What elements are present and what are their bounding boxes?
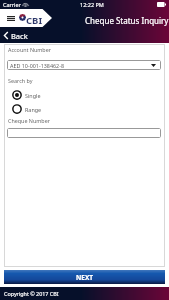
staticText: AED 10-001-138462-8: [10, 62, 64, 69]
button[interactable]: [7, 128, 161, 138]
button[interactable]: AED 10-001-138462-8: [7, 60, 161, 70]
staticText: Back: [11, 31, 28, 41]
button[interactable]: Single: [12, 90, 41, 100]
staticText: Account Number: [8, 46, 51, 53]
staticText: Copyright © 2017 CBI: [4, 290, 59, 297]
button[interactable]: Open navigation menu: [4, 12, 18, 24]
staticText: Single: [25, 92, 41, 99]
staticText: Search by: [8, 77, 33, 84]
staticText: NEXT: [76, 273, 94, 282]
staticText: Range: [25, 106, 42, 113]
staticText: Carrier: [3, 1, 21, 8]
staticText: Cheque Number: [8, 117, 50, 124]
button[interactable]: Range: [12, 104, 42, 114]
staticText: CBI: [26, 14, 43, 27]
staticText: 12:22 PM: [80, 1, 104, 8]
button[interactable]: Back: [4, 30, 28, 41]
button[interactable]: NEXT: [4, 270, 165, 284]
staticText: Cheque Status Inquiry: [85, 15, 169, 26]
